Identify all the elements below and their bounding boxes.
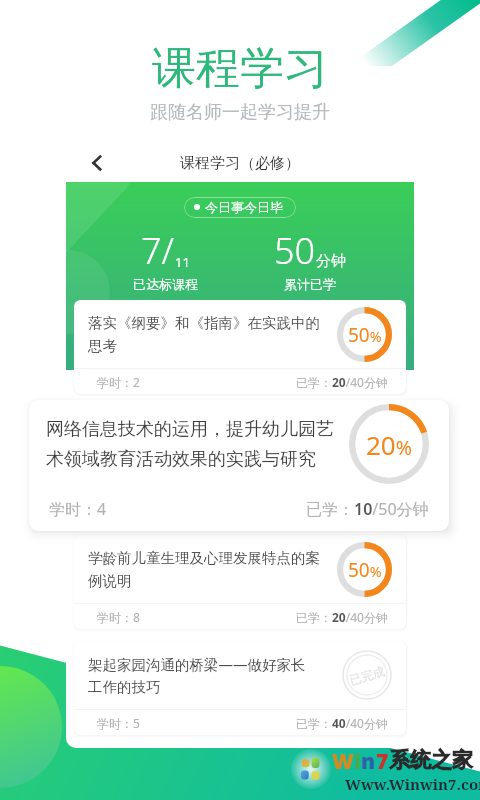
staticText: 今日事今日毕	[205, 199, 283, 215]
staticText: i	[354, 747, 361, 776]
staticText: 已学：20/40分钟	[296, 374, 388, 390]
staticText: 50%	[348, 557, 382, 583]
staticText: n	[361, 747, 376, 776]
staticText: 学时：2	[97, 374, 140, 390]
staticText: 已学：20/40分钟	[296, 609, 388, 625]
staticText: 11	[175, 253, 190, 271]
staticText: 系统之家	[389, 747, 473, 773]
staticText: 已学：40/40分钟	[296, 715, 388, 731]
staticText: 课程学习（必修）	[180, 154, 300, 173]
staticText: 学时：5	[97, 715, 140, 731]
staticText: 学时：4	[49, 498, 107, 520]
staticText: 已达标课程	[133, 276, 198, 292]
staticText: 50%	[348, 322, 382, 348]
button[interactable]: 架起家园沟通的桥梁——做好家长 工作的技巧	[74, 641, 406, 735]
staticText: 累计已学	[284, 276, 336, 292]
staticText: 50	[274, 226, 316, 275]
staticText: Www.Winwin7.com	[345, 774, 480, 794]
staticText: 架起家园沟通的桥梁——做好家长 工作的技巧	[88, 654, 322, 696]
staticText: 分钟	[316, 252, 346, 271]
staticText: 跟随名师一起学习提升	[150, 101, 330, 124]
staticText: W	[332, 747, 354, 776]
staticText: 已完成	[348, 663, 386, 688]
staticText: 已学：10/50分钟	[306, 498, 429, 520]
staticText: 课程学习	[152, 41, 328, 96]
staticText: 网络信息技术的运用，提升幼儿园艺 术领域教育活动效果的实践与研究	[46, 418, 349, 470]
button[interactable]: Back	[78, 144, 116, 182]
staticText: 学龄前儿童生理及心理发展特点的案 例说明	[88, 549, 322, 590]
button[interactable]: 落实《纲要》和《指南》在实践中的 思考	[74, 300, 406, 394]
button[interactable]: 网络信息技术的运用，提升幼儿园艺 术领域教育活动效果的实践与研究	[29, 400, 449, 531]
staticText: 7	[376, 747, 389, 776]
button[interactable]: 学龄前儿童生理及心理发展特点的案 例说明	[74, 535, 406, 629]
staticText: 学时：8	[97, 609, 140, 625]
staticText: 20%	[366, 427, 412, 462]
staticText: 落实《纲要》和《指南》在实践中的 思考	[88, 314, 322, 355]
button[interactable]: 今日事今日毕	[194, 199, 283, 215]
staticText: 7/	[141, 226, 175, 275]
